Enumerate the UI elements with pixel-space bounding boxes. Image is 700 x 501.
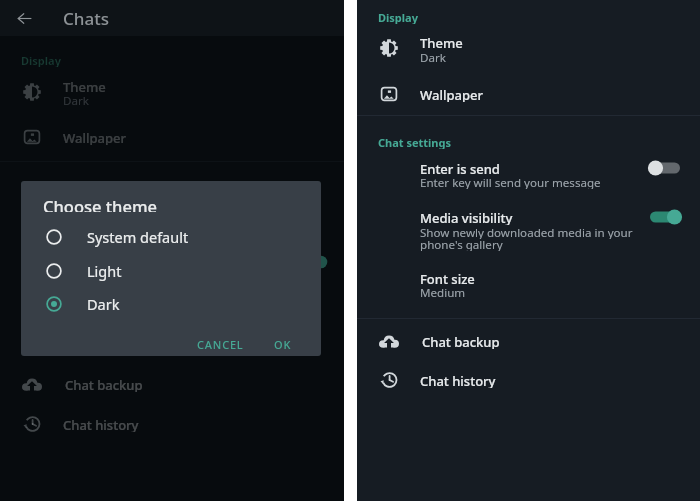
- staticText: Theme: [63, 78, 106, 94]
- button[interactable]: System default: [21, 221, 321, 253]
- button[interactable]: Disabled: [641, 156, 689, 180]
- staticText: Enter is send: [420, 160, 500, 176]
- button[interactable]: CANCEL: [188, 333, 253, 355]
- staticText: Chats: [63, 7, 109, 30]
- staticText: Chat backup: [422, 333, 500, 349]
- staticText: Theme: [420, 34, 463, 50]
- staticText: System default: [87, 227, 189, 247]
- staticText: Show newly downloaded media in your: [420, 225, 633, 239]
- staticText: Chat history: [63, 416, 139, 432]
- staticText: Light: [87, 261, 122, 281]
- staticText: Chat settings: [378, 135, 451, 149]
- staticText: CANCEL: [197, 337, 244, 352]
- staticText: Chat history: [420, 372, 496, 388]
- staticText: Font size: [420, 270, 475, 286]
- button[interactable]: OK: [265, 333, 301, 355]
- staticText: Display: [21, 53, 61, 67]
- staticText: Choose theme: [43, 195, 157, 212]
- staticText: OK: [274, 337, 292, 352]
- staticText: Wallpaper: [63, 129, 126, 145]
- button[interactable]: Light: [21, 255, 321, 287]
- staticText: Chat backup: [65, 376, 143, 392]
- staticText: Medium: [420, 285, 466, 299]
- staticText: Display: [378, 10, 418, 24]
- staticText: phone's gallery: [420, 237, 503, 251]
- staticText: Enter key will send your message: [420, 175, 601, 189]
- staticText: Wallpaper: [420, 86, 483, 102]
- staticText: Dark: [420, 50, 446, 64]
- staticText: Dark: [63, 93, 89, 107]
- button[interactable]: Dark: [21, 288, 321, 320]
- staticText: Dark: [87, 294, 120, 314]
- button[interactable]: Back: [12, 6, 36, 30]
- staticText: Media visibility: [420, 209, 513, 225]
- button[interactable]: Enabled: [641, 205, 689, 229]
